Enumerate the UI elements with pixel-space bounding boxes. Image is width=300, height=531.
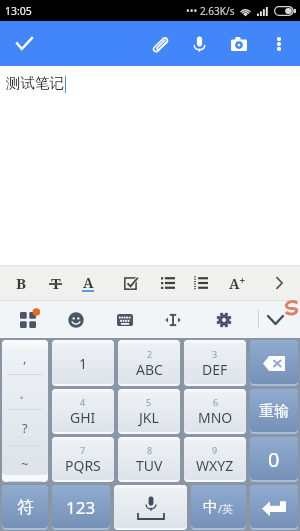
staticText: 9	[212, 444, 218, 456]
staticText: WXYZ	[196, 456, 234, 475]
button[interactable]: Attach	[141, 21, 178, 66]
staticText: B	[16, 273, 27, 293]
button[interactable]: 符	[2, 485, 48, 530]
button[interactable]: More formatting	[261, 266, 297, 300]
button[interactable]: Underline	[70, 266, 106, 300]
button[interactable]: Apps	[4, 301, 52, 338]
button[interactable]: Backspace	[250, 340, 298, 386]
button[interactable]: 123	[52, 485, 110, 530]
button[interactable]: Voice input	[181, 21, 218, 66]
staticText: GHI	[70, 408, 96, 427]
button[interactable]: 中/英	[191, 485, 246, 530]
button[interactable]: DEF	[184, 340, 246, 386]
staticText: /英	[218, 501, 234, 516]
button[interactable]: Bold	[3, 266, 39, 300]
button[interactable]: Checklist	[113, 266, 149, 300]
button[interactable]: Voice input and space	[114, 485, 187, 530]
button[interactable]: Camera	[220, 21, 257, 66]
staticText: 2	[147, 348, 153, 360]
staticText: ~	[21, 455, 29, 473]
staticText: ,	[23, 349, 27, 367]
button[interactable]: Settings	[200, 301, 248, 338]
button[interactable]: JKL	[118, 389, 180, 434]
staticText: 13:05	[5, 4, 32, 18]
button[interactable]: Strikethrough	[37, 266, 73, 300]
staticText: 7	[80, 444, 86, 456]
staticText: A⁺	[229, 274, 246, 293]
staticText: JKL	[139, 408, 159, 427]
button[interactable]: More options	[262, 21, 295, 66]
staticText: ABC	[136, 360, 163, 379]
staticText: TUV	[136, 456, 163, 475]
staticText: 3	[212, 348, 218, 360]
button[interactable]: WXYZ	[184, 437, 246, 482]
staticText: 。	[19, 385, 32, 401]
button[interactable]: Font size	[219, 266, 255, 300]
staticText: 8	[147, 444, 153, 456]
staticText: MNO	[198, 408, 233, 427]
button[interactable]: Punctuation	[2, 340, 48, 482]
staticText: 测试笔记	[6, 74, 64, 92]
button[interactable]: 0	[250, 437, 298, 482]
button[interactable]: 重输	[250, 389, 298, 434]
staticText: 符	[17, 497, 34, 518]
staticText: T	[51, 273, 61, 293]
button[interactable]: Emoji	[52, 301, 100, 338]
button[interactable]: Keyboard layout	[101, 301, 149, 338]
staticText: 1	[79, 354, 88, 373]
staticText: ?	[22, 419, 28, 437]
button[interactable]: Hide keyboard	[252, 301, 298, 338]
button[interactable]: TUV	[118, 437, 180, 482]
button[interactable]: 1	[52, 340, 114, 386]
staticText: 0	[268, 446, 280, 473]
staticText: 123	[66, 496, 96, 519]
staticText: A	[83, 273, 94, 292]
button[interactable]: Bulleted list	[150, 266, 186, 300]
button[interactable]: GHI	[52, 389, 114, 434]
staticText: 重输	[259, 402, 289, 421]
staticText: PQRS	[65, 456, 101, 475]
staticText: 中	[203, 498, 218, 517]
staticText: 6	[213, 396, 219, 408]
staticText: ••• 2.63K/s	[186, 4, 235, 18]
button[interactable]: Move cursor	[149, 301, 197, 338]
button[interactable]: Enter	[250, 485, 298, 530]
staticText: DEF	[202, 360, 228, 379]
button[interactable]: PQRS	[52, 437, 114, 482]
button[interactable]: ABC	[118, 340, 180, 386]
staticText: 4	[80, 396, 86, 408]
button[interactable]: Numbered list	[183, 266, 219, 300]
button[interactable]: MNO	[184, 389, 246, 434]
button[interactable]: Save	[6, 21, 42, 66]
staticText: 5	[146, 396, 152, 408]
